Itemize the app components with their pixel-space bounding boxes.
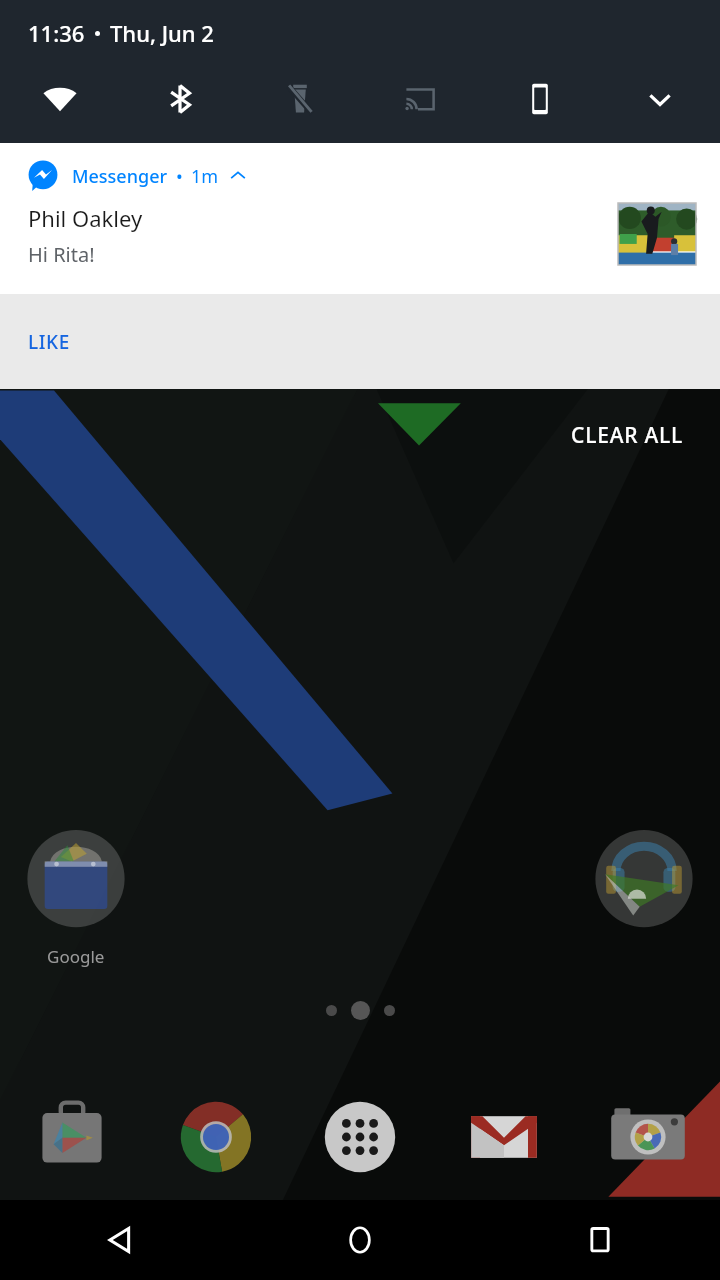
button[interactable]: Auto rotate (480, 68, 600, 130)
button[interactable]: Camera (576, 1082, 720, 1192)
button[interactable]: Play Store (0, 1082, 144, 1192)
staticText: LIKE (28, 329, 70, 355)
staticText: Google (47, 945, 105, 968)
staticText: CLEAR ALL (571, 421, 684, 450)
button[interactable]: Flashlight off (240, 68, 360, 130)
button[interactable]: Gmail (432, 1082, 576, 1192)
staticText: 1m (191, 164, 219, 189)
staticText: Phil Oakley (28, 203, 143, 233)
button[interactable]: Expand (600, 68, 720, 130)
button[interactable]: Recents (480, 1200, 720, 1280)
button[interactable]: Wi-Fi (0, 68, 120, 130)
button[interactable]: Back (0, 1200, 240, 1280)
button[interactable]: LIKE (0, 294, 720, 389)
button[interactable]: Chrome (144, 1082, 288, 1192)
button[interactable]: CLEAR ALL (565, 415, 690, 456)
button[interactable]: Google (22, 829, 130, 968)
button[interactable]: Bluetooth (120, 68, 240, 130)
button[interactable]: Home (240, 1200, 480, 1280)
button[interactable]: Apps (288, 1082, 432, 1192)
button[interactable]: Messenger (0, 143, 720, 389)
staticText: Thu, Jun 2 (110, 18, 214, 48)
button[interactable]: Cast (360, 68, 480, 130)
button[interactable]: Media folder (590, 829, 698, 937)
staticText: • (176, 164, 183, 189)
staticText: Messenger (72, 164, 168, 189)
staticText: Hi Rita! (28, 241, 95, 268)
staticText: 11:36 (28, 18, 85, 48)
